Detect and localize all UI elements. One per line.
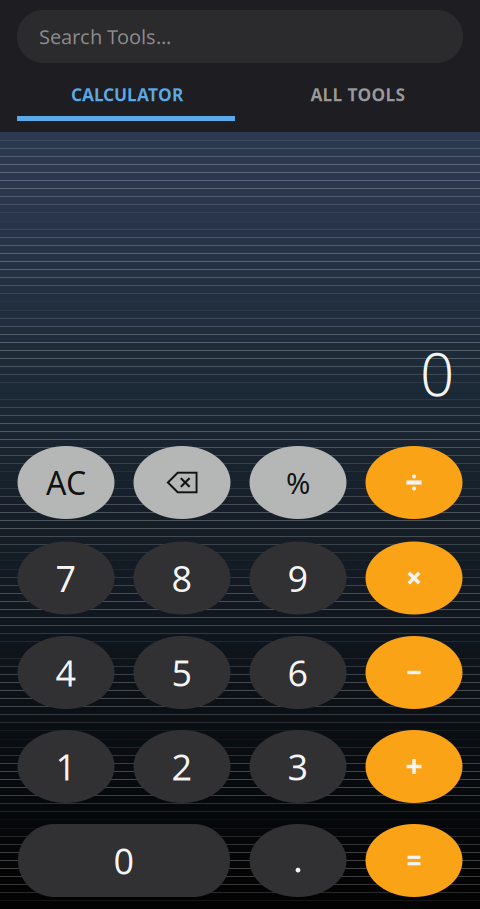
button[interactable]: 7 (17, 541, 114, 614)
button[interactable]: 0 (18, 824, 230, 897)
button[interactable]: Equals (365, 824, 462, 897)
staticText: Search Tools... (39, 23, 171, 50)
staticText: 3 (287, 743, 308, 790)
button[interactable]: ALL TOOLS (254, 72, 480, 117)
button[interactable]: 9 (249, 541, 346, 614)
button[interactable]: 8 (133, 541, 230, 614)
staticText: 4 (55, 649, 76, 696)
staticText: 1 (55, 743, 76, 790)
button[interactable]: Search Tools... (17, 10, 463, 63)
staticText: 2 (171, 743, 192, 790)
staticText: ALL TOOLS (310, 83, 405, 106)
button[interactable]: 6 (249, 636, 346, 709)
staticText: 0 (420, 333, 454, 413)
staticText: 9 (287, 554, 308, 602)
button[interactable]: Minus (365, 636, 462, 709)
staticText: 5 (171, 649, 192, 696)
button[interactable]: Delete (133, 446, 230, 519)
button[interactable]: 2 (133, 730, 230, 803)
button[interactable]: All clear (17, 446, 114, 519)
button[interactable]: 3 (249, 730, 346, 803)
staticText: 6 (287, 649, 308, 696)
button[interactable]: 4 (17, 636, 114, 709)
button[interactable]: Decimal point (249, 824, 346, 897)
button[interactable]: Multiply (365, 541, 462, 614)
staticText: 8 (171, 554, 192, 602)
button[interactable]: 5 (133, 636, 230, 709)
button[interactable]: Divide (365, 446, 462, 519)
button[interactable]: CALCULATOR (0, 72, 254, 117)
staticText: AC (46, 461, 86, 504)
staticText: % (286, 463, 310, 502)
staticText: CALCULATOR (71, 83, 183, 106)
button[interactable]: Plus (365, 730, 462, 803)
staticText: 7 (55, 554, 76, 602)
button[interactable]: 1 (17, 730, 114, 803)
button[interactable]: Percent (249, 446, 346, 519)
staticText: 0 (113, 837, 134, 884)
